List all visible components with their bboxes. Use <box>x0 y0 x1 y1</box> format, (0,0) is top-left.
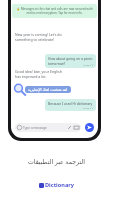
staticText: 12:40 ✓✓ <box>83 63 94 66</box>
staticText: 12:42 ✓✓ <box>83 106 94 109</box>
staticText: لقد تحسّنت لغتك الإنجليزية <box>28 87 68 92</box>
staticText: 🔒 Messages to this chat and calls are no… <box>16 7 93 15</box>
staticText: How about going on a picnic tomorrow? <box>48 56 94 66</box>
button[interactable]: Send <box>85 123 94 132</box>
staticText: New year is coming! Let's do something t… <box>15 32 68 42</box>
staticText: الترجمة عبر التطبيقات <box>28 157 85 165</box>
staticText: Because I used Hi dictionary <box>48 101 93 106</box>
staticText: Dictionary <box>45 181 74 189</box>
other: Attach <box>67 125 72 130</box>
button[interactable]: Type a message <box>15 123 81 132</box>
staticText: Good idea! btw, your English has improve… <box>15 69 67 79</box>
other: Camera <box>74 125 79 130</box>
staticText: Type a message <box>23 126 47 130</box>
